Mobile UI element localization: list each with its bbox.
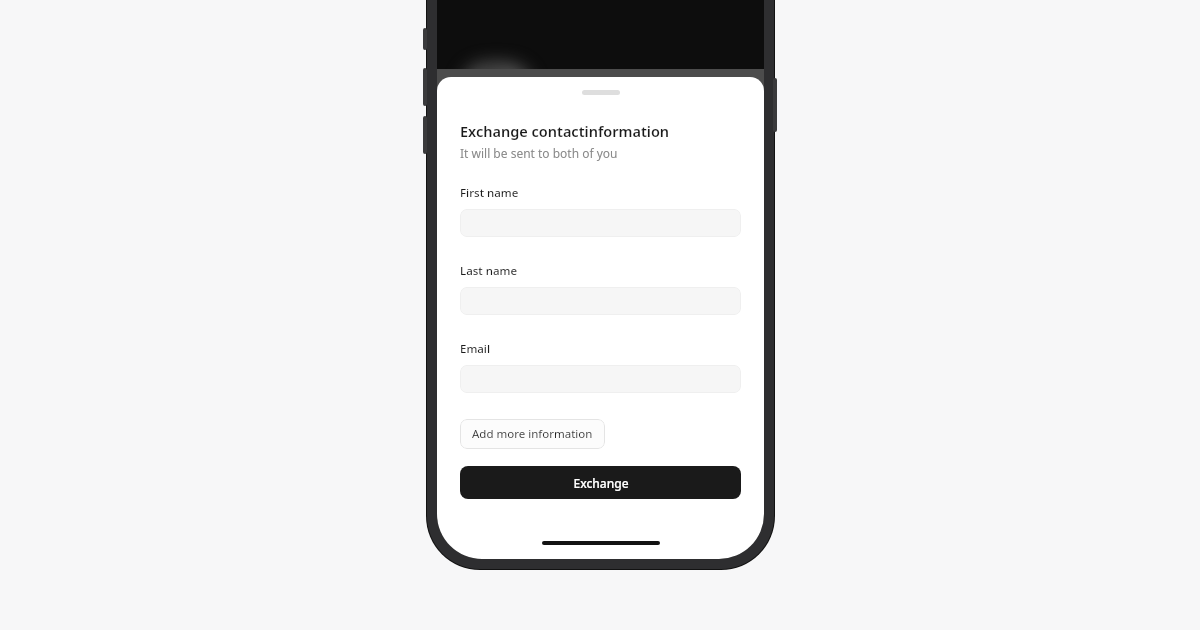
button[interactable]: Add more information (460, 419, 605, 449)
staticText: Email (460, 341, 491, 357)
staticText: Last name (460, 263, 517, 279)
staticText: It will be sent to both of you (460, 145, 618, 161)
staticText: Add more information (472, 426, 593, 442)
staticText: Exchange contactinformation (460, 121, 670, 141)
staticText: First name (460, 185, 519, 201)
button[interactable]: Exchange (460, 466, 741, 499)
staticText: Exchange (573, 475, 629, 491)
